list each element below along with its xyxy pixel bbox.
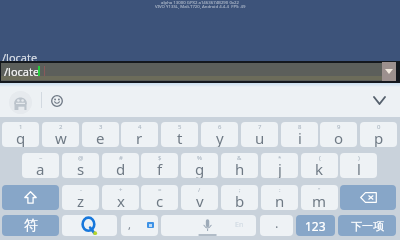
button[interactable]: Emoji	[49, 93, 64, 108]
staticText: /	[198, 186, 201, 194]
staticText: b	[235, 191, 245, 210]
button[interactable]: Next	[338, 215, 396, 236]
button[interactable]: a	[22, 153, 59, 178]
button[interactable]: c	[141, 185, 178, 210]
staticText: 7	[258, 123, 262, 131]
staticText: s	[77, 159, 85, 178]
staticText: *	[278, 154, 282, 162]
button[interactable]: Symbols	[2, 215, 59, 236]
staticText: $	[158, 154, 162, 162]
staticText: ;	[239, 186, 241, 194]
staticText: y	[216, 128, 224, 147]
button[interactable]: z	[62, 185, 99, 210]
staticText: f	[157, 159, 163, 178]
button[interactable]: t	[161, 122, 198, 147]
staticText: 4	[138, 123, 142, 131]
button[interactable]: Sogou input	[62, 215, 117, 236]
staticText: o	[334, 128, 344, 147]
staticText: x	[117, 191, 125, 210]
button[interactable]: Shift	[2, 185, 59, 210]
button[interactable]: v	[181, 185, 218, 210]
staticText: w	[55, 128, 67, 147]
staticText: n	[275, 191, 285, 210]
staticText: d	[116, 159, 126, 178]
staticText: c	[156, 191, 164, 210]
staticText: %	[197, 154, 202, 162]
button[interactable]: Comma and layout	[121, 215, 158, 236]
staticText: z	[77, 191, 85, 210]
staticText: "	[318, 186, 321, 194]
staticText: 8	[298, 123, 302, 131]
button[interactable]: Show history	[382, 62, 396, 81]
staticText: ~	[39, 154, 43, 162]
button[interactable]: o	[320, 122, 357, 147]
button[interactable]: Numbers	[296, 215, 335, 236]
staticText: u	[255, 128, 265, 147]
staticText: 3	[99, 123, 103, 131]
staticText: =	[158, 186, 162, 194]
staticText: 5	[178, 123, 182, 131]
staticText: .	[275, 215, 279, 232]
staticText: -	[80, 186, 82, 194]
staticText: /locate	[2, 50, 38, 65]
button[interactable]: j	[261, 153, 298, 178]
staticText: alpha 13000 GPX2 a1463674B290 0x22	[161, 0, 240, 5]
staticText: v	[196, 191, 204, 210]
button[interactable]: g	[181, 153, 218, 178]
staticText: 6	[218, 123, 222, 131]
button[interactable]: u	[241, 122, 278, 147]
button[interactable]: b	[221, 185, 258, 210]
button[interactable]: /locate	[1, 63, 382, 81]
button[interactable]: r	[121, 122, 158, 147]
staticText: e	[96, 128, 105, 147]
staticText: m	[312, 191, 327, 210]
staticText: &	[237, 154, 242, 162]
button[interactable]: l	[340, 153, 377, 178]
staticText: 123	[305, 218, 326, 234]
staticText: @	[78, 154, 84, 162]
staticText: 0	[377, 123, 381, 131]
button[interactable]: Input method settings	[9, 91, 32, 114]
button[interactable]: w	[42, 122, 79, 147]
button[interactable]: Hide keyboard	[369, 90, 389, 110]
staticText: h	[235, 159, 245, 178]
staticText: VIVO Y13SL, Mali-T720, Android 4.4.4 FPS…	[155, 3, 246, 9]
staticText: p	[374, 128, 384, 147]
staticText: 1	[19, 123, 23, 131]
button[interactable]: y	[201, 122, 238, 147]
button[interactable]: p	[360, 122, 397, 147]
staticText: /locate	[4, 64, 40, 79]
button[interactable]: Backspace	[340, 185, 396, 210]
staticText: l	[357, 159, 361, 178]
staticText: En	[235, 220, 244, 230]
staticText: q	[16, 128, 26, 147]
button[interactable]: k	[301, 153, 338, 178]
staticText: k	[315, 159, 324, 178]
staticText: r	[136, 128, 143, 147]
staticText: 下一项	[351, 219, 384, 233]
button[interactable]: e	[82, 122, 119, 147]
staticText: (	[319, 154, 321, 162]
button[interactable]: h	[221, 153, 258, 178]
button[interactable]: m	[301, 185, 338, 210]
staticText: 9	[337, 123, 341, 131]
button[interactable]: i	[281, 122, 318, 147]
staticText: g	[195, 159, 205, 178]
staticText: i	[298, 128, 302, 147]
button[interactable]: s	[62, 153, 99, 178]
staticText: 符	[24, 217, 38, 235]
staticText: ,	[128, 217, 131, 232]
staticText: +	[119, 186, 123, 194]
button[interactable]: n	[261, 185, 298, 210]
staticText: t	[177, 128, 183, 147]
button[interactable]: d	[102, 153, 139, 178]
staticText: j	[278, 159, 282, 178]
button[interactable]: .	[260, 215, 293, 236]
button[interactable]: f	[141, 153, 178, 178]
staticText: :	[279, 186, 281, 194]
button[interactable]: q	[2, 122, 39, 147]
button[interactable]: x	[102, 185, 139, 210]
staticText: 2	[59, 123, 63, 131]
button[interactable]: Space	[161, 215, 256, 236]
staticText: #	[119, 154, 123, 162]
